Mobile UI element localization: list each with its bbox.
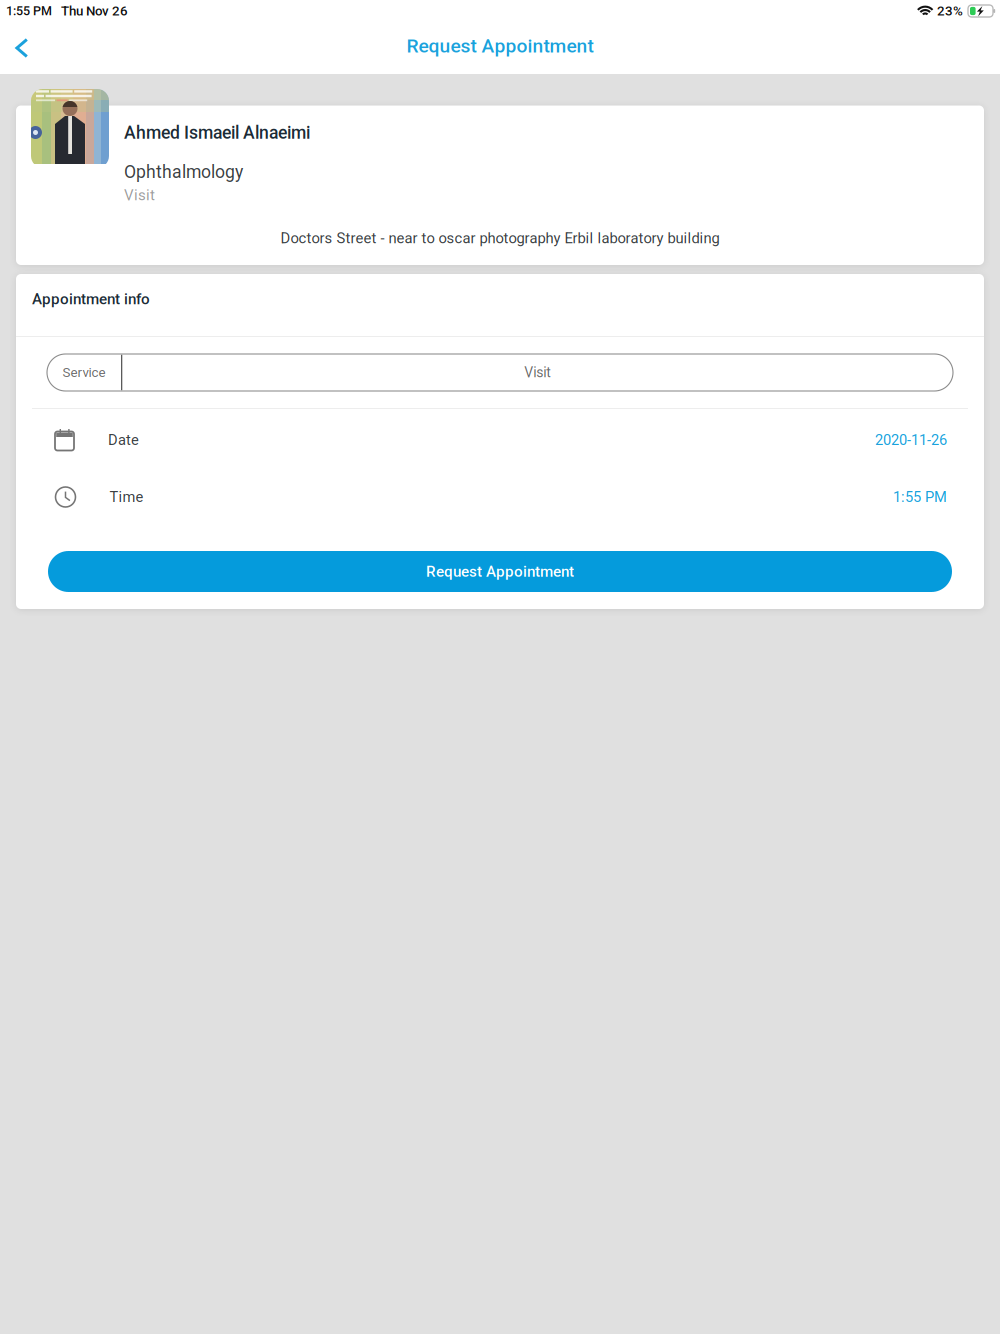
staticText: 2020-11-26	[875, 431, 947, 449]
staticText: Time	[109, 488, 143, 506]
staticText: Request Appointment	[406, 35, 593, 57]
staticText: Request Appointment	[426, 563, 574, 580]
button[interactable]: Time	[16, 466, 984, 523]
staticText: Appointment info	[32, 290, 150, 308]
staticText: Ophthalmology	[124, 162, 243, 182]
button[interactable]: Back	[0, 22, 49, 74]
staticText: 1:55 PM	[6, 4, 52, 18]
staticText: Date	[108, 431, 139, 449]
staticText: Service	[62, 365, 105, 380]
staticText: Visit	[524, 364, 551, 381]
staticText: Ahmed Ismaeil Alnaeimi	[124, 122, 310, 143]
staticText: 1:55 PM	[893, 488, 947, 506]
staticText: Thu Nov 26	[61, 3, 128, 19]
button[interactable]: Date	[16, 409, 984, 466]
staticText: Visit	[124, 186, 155, 204]
staticText: Doctors Street - near to oscar photograp…	[280, 229, 719, 247]
button[interactable]: Request Appointment	[16, 551, 984, 592]
staticText: 23%	[937, 3, 963, 19]
